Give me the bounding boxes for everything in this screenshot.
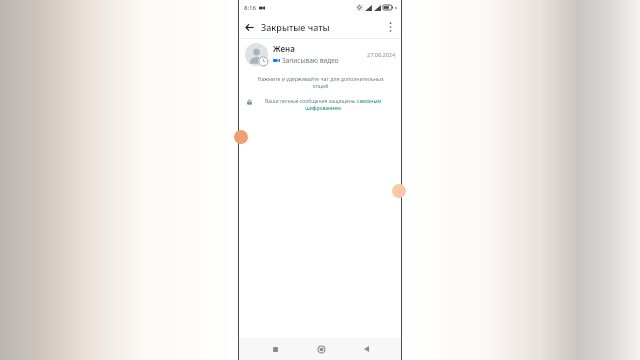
- button[interactable]: Назад: [357, 340, 375, 358]
- button[interactable]: Недавние: [266, 340, 284, 358]
- staticText: 27.06.2024: [367, 51, 396, 58]
- staticText: Записываю видео: [282, 56, 339, 65]
- staticText: Закрытые чаты: [261, 21, 330, 33]
- button[interactable]: Назад: [239, 17, 259, 37]
- button[interactable]: Главный экран: [312, 340, 330, 358]
- staticText: 8:16: [244, 4, 256, 12]
- button[interactable]: Жена: [239, 39, 402, 69]
- staticText: Нажмите и удерживайте чат для дополнител…: [249, 75, 392, 89]
- staticText: Ваши личные сообщения защищены сквозным …: [262, 98, 384, 112]
- staticText: Жена: [273, 43, 295, 54]
- button[interactable]: Ваши личные сообщения защищены сквозным …: [247, 98, 394, 112]
- button[interactable]: Ещё: [380, 17, 400, 37]
